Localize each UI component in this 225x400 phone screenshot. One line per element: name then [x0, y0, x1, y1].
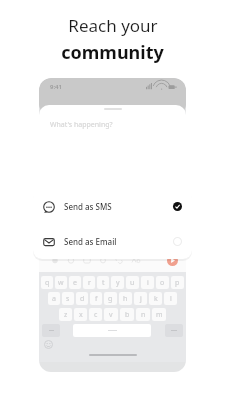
button[interactable]: o: [156, 276, 169, 289]
staticText: e: [73, 278, 77, 288]
staticText: h: [123, 294, 128, 304]
staticText: p: [175, 278, 180, 288]
button[interactable]: Send as SMS: [33, 189, 192, 224]
staticText: w: [58, 278, 64, 288]
button[interactable]: n: [136, 308, 150, 321]
button[interactable]: t: [97, 276, 109, 289]
button[interactable]: Send as Email: [33, 224, 192, 259]
staticText: u: [130, 278, 135, 288]
button[interactable]: q: [41, 276, 53, 289]
staticText: s: [66, 294, 70, 304]
button[interactable]: z: [59, 308, 72, 321]
staticText: k: [154, 294, 158, 304]
staticText: f: [95, 294, 98, 304]
staticText: g: [108, 294, 113, 304]
staticText: v: [109, 310, 113, 320]
button[interactable]: return: [165, 324, 183, 337]
staticText: 9:41: [50, 83, 62, 91]
staticText: i: [147, 278, 149, 288]
staticText: n: [141, 310, 146, 320]
staticText: y: [116, 278, 120, 288]
staticText: Send as SMS: [64, 201, 112, 212]
button[interactable]: c: [89, 308, 102, 321]
button[interactable]: u: [126, 276, 139, 289]
button[interactable]: w: [55, 276, 67, 289]
staticText: c: [94, 310, 98, 320]
button[interactable]: s: [62, 292, 74, 305]
staticText: community: [61, 40, 164, 65]
button[interactable]: a: [48, 292, 60, 305]
staticText: Send as Email: [64, 236, 117, 247]
button[interactable]: h: [119, 292, 132, 305]
button[interactable]: v: [104, 308, 118, 321]
button[interactable]: d: [76, 292, 88, 305]
button[interactable]: Send: [167, 255, 178, 266]
staticText: z: [64, 310, 68, 320]
button[interactable]: g: [104, 292, 117, 305]
staticText: m: [156, 310, 163, 320]
staticText: o: [160, 278, 165, 288]
button[interactable]: l: [164, 292, 177, 305]
staticText: x: [79, 310, 83, 320]
staticText: j: [140, 294, 142, 304]
staticText: d: [80, 294, 85, 304]
button[interactable]: f: [90, 292, 102, 305]
button[interactable]: x: [74, 308, 87, 321]
button[interactable]: k: [149, 292, 162, 305]
staticText: b: [125, 310, 130, 320]
button[interactable]: i: [141, 276, 154, 289]
button[interactable]: j: [134, 292, 147, 305]
button[interactable]: m: [152, 308, 166, 321]
button[interactable]: r: [83, 276, 95, 289]
staticText: What's happening?: [50, 120, 113, 130]
staticText: q: [45, 278, 50, 288]
staticText: r: [88, 278, 91, 288]
button[interactable]: Emoji: [44, 340, 53, 349]
button[interactable]: 123: [42, 324, 60, 337]
button[interactable]: y: [111, 276, 124, 289]
staticText: t: [102, 278, 105, 288]
button[interactable]: e: [69, 276, 81, 289]
button[interactable]: p: [171, 276, 184, 289]
button[interactable]: space: [73, 324, 151, 337]
staticText: l: [170, 294, 172, 304]
button[interactable]: b: [120, 308, 134, 321]
staticText: a: [52, 294, 56, 304]
staticText: Reach your: [68, 14, 158, 37]
